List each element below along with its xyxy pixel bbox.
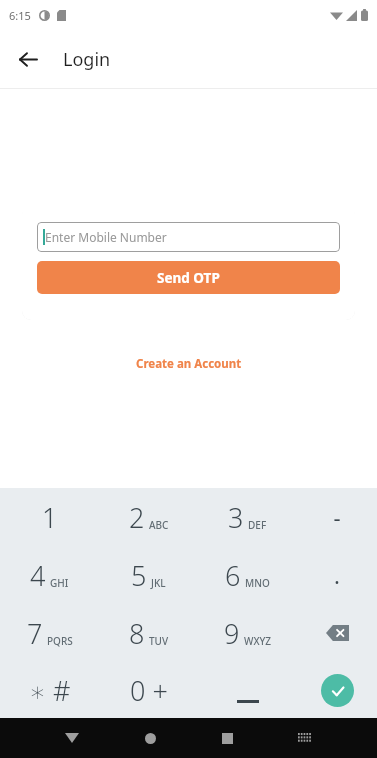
button[interactable]: Send OTP [37, 261, 340, 294]
button[interactable]: - [297, 488, 377, 546]
staticText: Send OTP [157, 269, 220, 287]
button[interactable]: 7 [0, 604, 99, 662]
button[interactable]: Done [297, 662, 377, 718]
staticText: 2 [129, 499, 145, 536]
staticText: 5 [131, 557, 147, 594]
button[interactable]: 1 [0, 488, 99, 546]
staticText: TUV [149, 634, 169, 648]
button[interactable]: Space [198, 662, 297, 718]
staticText: ABC [149, 518, 169, 532]
staticText: . [334, 560, 340, 590]
staticText: 3 [228, 499, 244, 536]
button[interactable]: . [297, 546, 377, 604]
button[interactable]: Back [55, 721, 89, 755]
staticText: Enter Mobile Number [45, 229, 167, 245]
staticText: 4 [30, 557, 46, 594]
staticText: WXYZ [244, 634, 272, 648]
button[interactable]: Keyboard [288, 721, 322, 755]
staticText: 8 [129, 615, 145, 652]
staticText: 9 [224, 615, 240, 652]
button[interactable]: 4 [0, 546, 99, 604]
staticText: 0 + [130, 672, 168, 709]
staticText: GHI [50, 576, 69, 590]
button[interactable]: 5 [99, 546, 198, 604]
staticText: - [333, 502, 341, 532]
staticText: 1 [42, 499, 58, 536]
button[interactable]: Backspace [297, 604, 377, 662]
button[interactable]: 3 [198, 488, 297, 546]
staticText: 7 [27, 615, 43, 652]
staticText: DEF [248, 518, 267, 532]
staticText: 6:15 [9, 8, 31, 23]
button[interactable]: 6 [198, 546, 297, 604]
button[interactable]: 2 [99, 488, 198, 546]
button[interactable]: Home [133, 721, 167, 755]
button[interactable]: Recents [210, 721, 244, 755]
button[interactable]: Back [10, 41, 46, 77]
button[interactable]: 8 [99, 604, 198, 662]
staticText: Login [63, 47, 111, 72]
staticText: MNO [245, 576, 270, 590]
staticText: Create an Account [136, 356, 242, 372]
button[interactable]: 0 + [99, 662, 198, 718]
button[interactable]: ∗ # [0, 662, 99, 718]
staticText: ∗ # [29, 672, 71, 709]
staticText: 6 [225, 557, 241, 594]
button[interactable]: Create an Account [128, 352, 250, 376]
staticText: PQRS [47, 634, 73, 648]
button[interactable]: Enter Mobile Number [37, 222, 340, 252]
button[interactable]: 9 [198, 604, 297, 662]
staticText: JKL [151, 576, 166, 590]
